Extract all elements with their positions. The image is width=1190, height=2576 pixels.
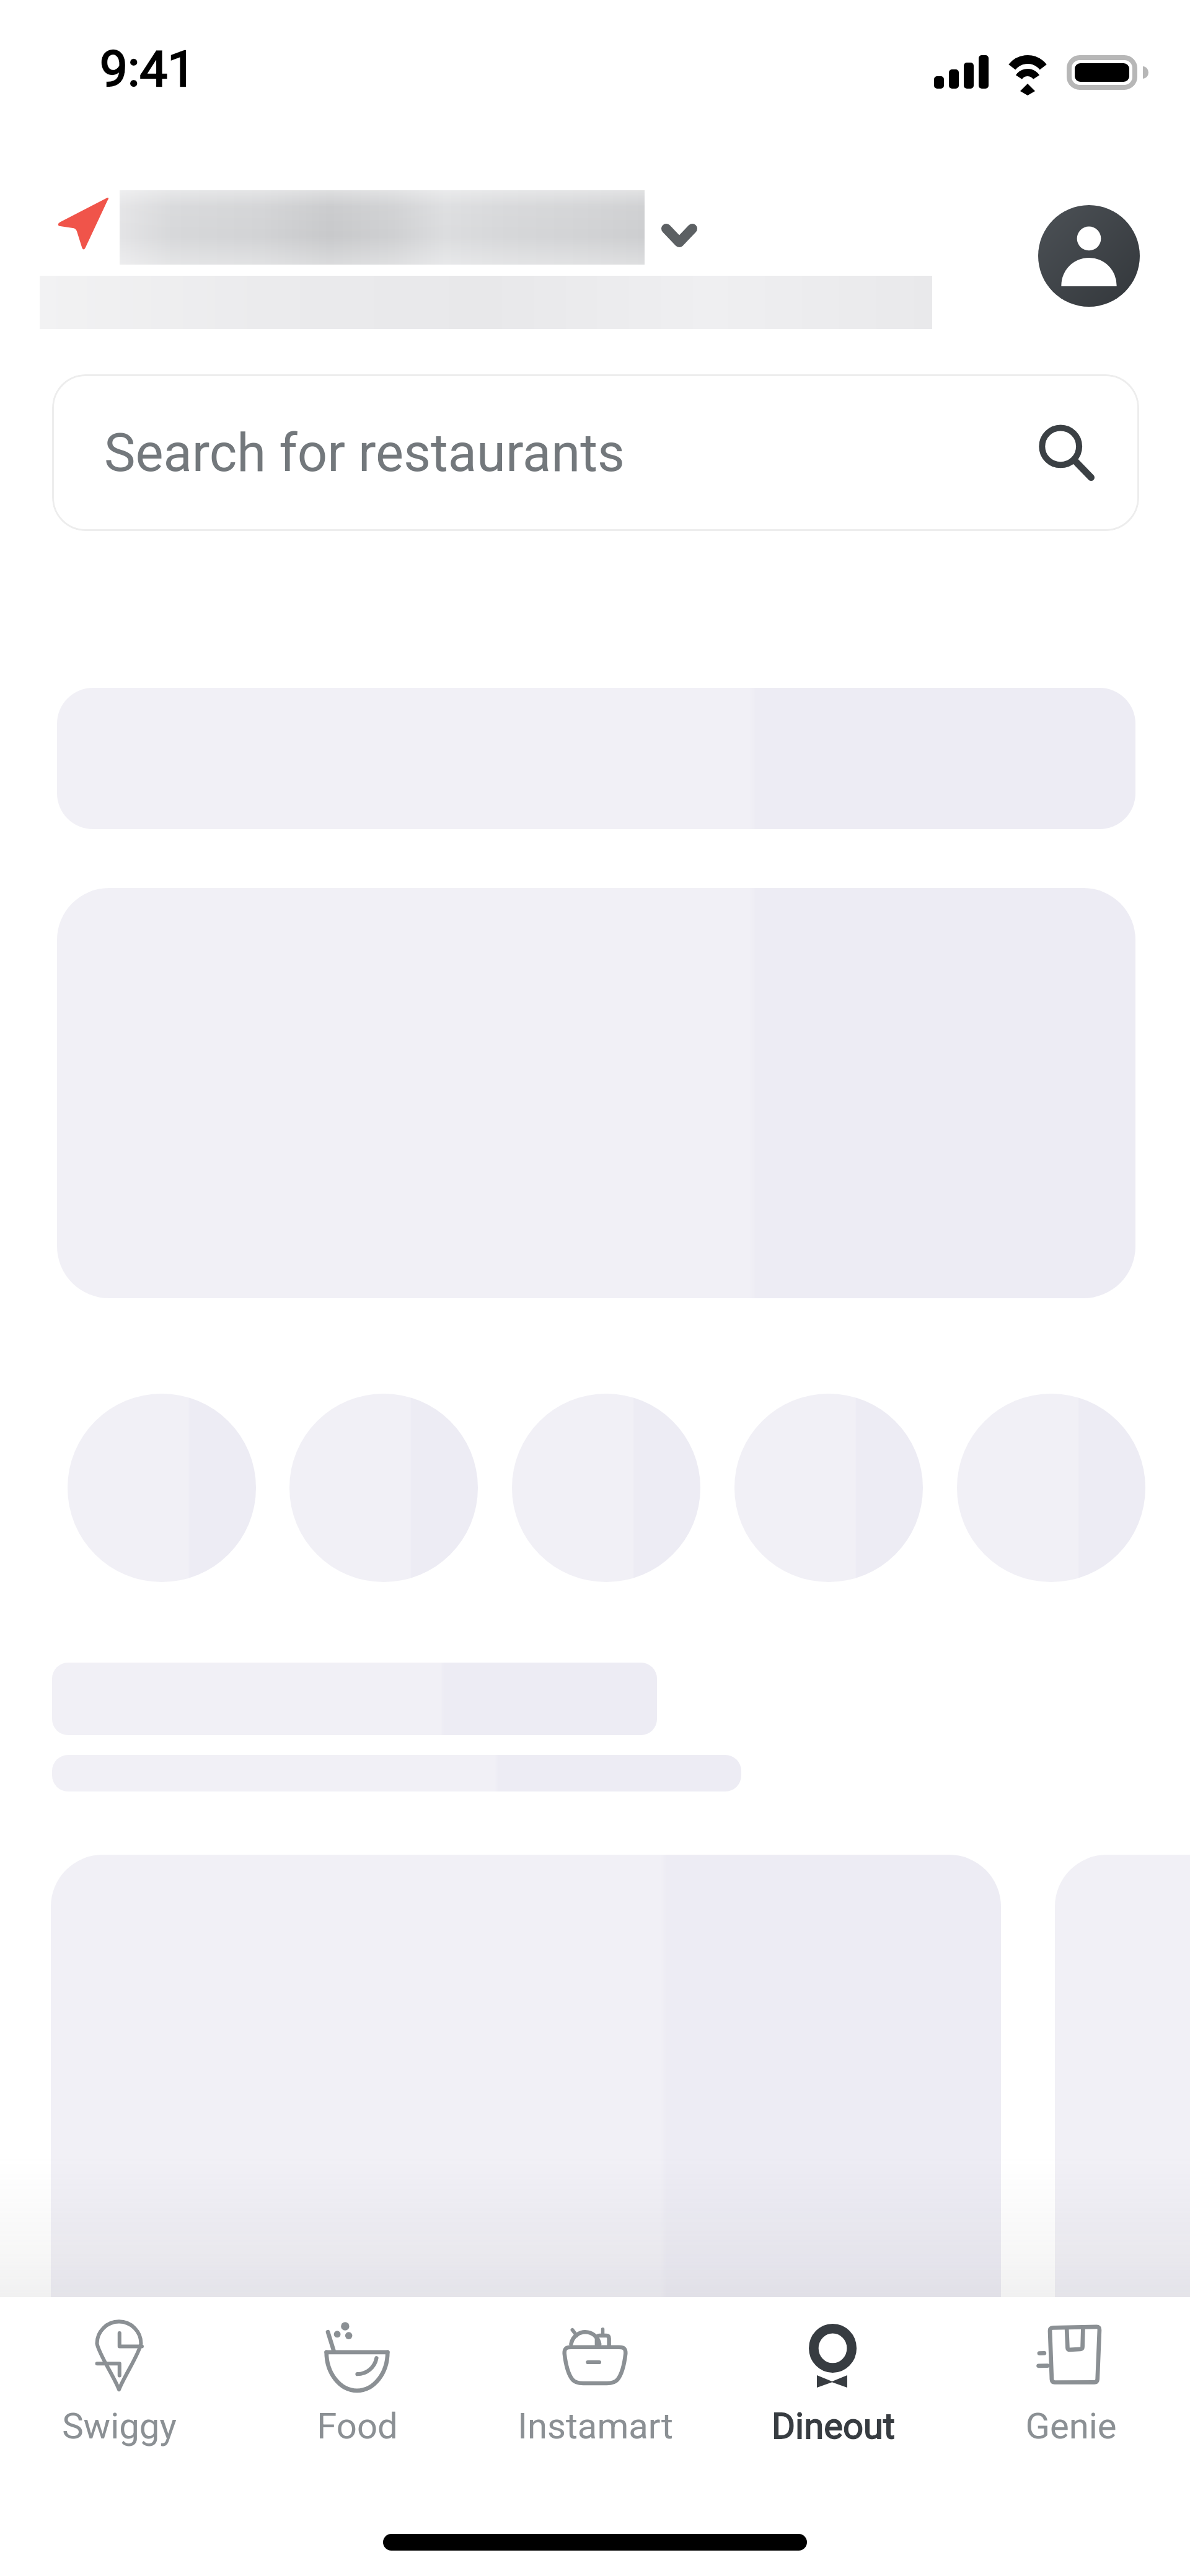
- staticText: Search for restaurants: [104, 422, 625, 484]
- button[interactable]: Swiggy: [0, 2297, 238, 2477]
- staticText: Swiggy: [62, 2405, 177, 2447]
- staticText: Dineout: [772, 2405, 895, 2447]
- staticText: 9:41: [100, 40, 196, 99]
- staticText: Food: [317, 2405, 398, 2447]
- staticText: Instamart: [518, 2405, 673, 2447]
- button[interactable]: Profile: [1038, 205, 1140, 307]
- button[interactable]: Dineout: [714, 2297, 952, 2477]
- button[interactable]: Genie: [952, 2297, 1190, 2477]
- button[interactable]: Instamart: [476, 2297, 714, 2477]
- button[interactable]: Food: [238, 2297, 476, 2477]
- staticText: Genie: [1025, 2405, 1117, 2447]
- button[interactable]: Search for restaurants: [52, 374, 1139, 531]
